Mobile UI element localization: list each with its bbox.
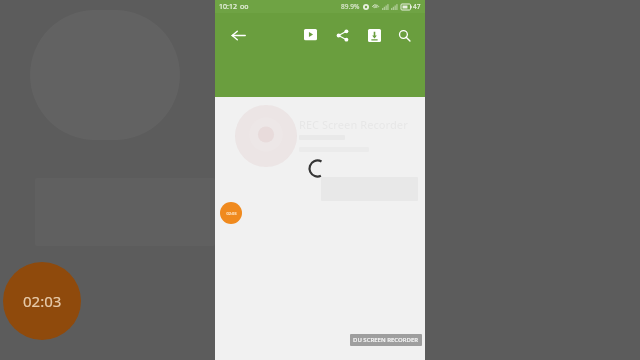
- staticText: 89.9%: [341, 2, 360, 11]
- button[interactable]: Recording control: [220, 202, 242, 224]
- button[interactable]: Back: [225, 22, 251, 48]
- staticText: DU SCREEN RECORDER: [353, 336, 419, 344]
- staticText: 02:03: [23, 291, 62, 311]
- staticText: 02:03: [226, 211, 237, 216]
- button[interactable]: Recording timer: [3, 262, 81, 340]
- button[interactable]: Share: [329, 22, 355, 48]
- button[interactable]: Search: [391, 22, 417, 48]
- staticText: oo: [240, 2, 249, 12]
- staticText: 47: [413, 2, 421, 11]
- staticText: 10:12: [219, 2, 237, 12]
- button[interactable]: Download: [361, 22, 387, 48]
- button[interactable]: Cast: [297, 22, 323, 48]
